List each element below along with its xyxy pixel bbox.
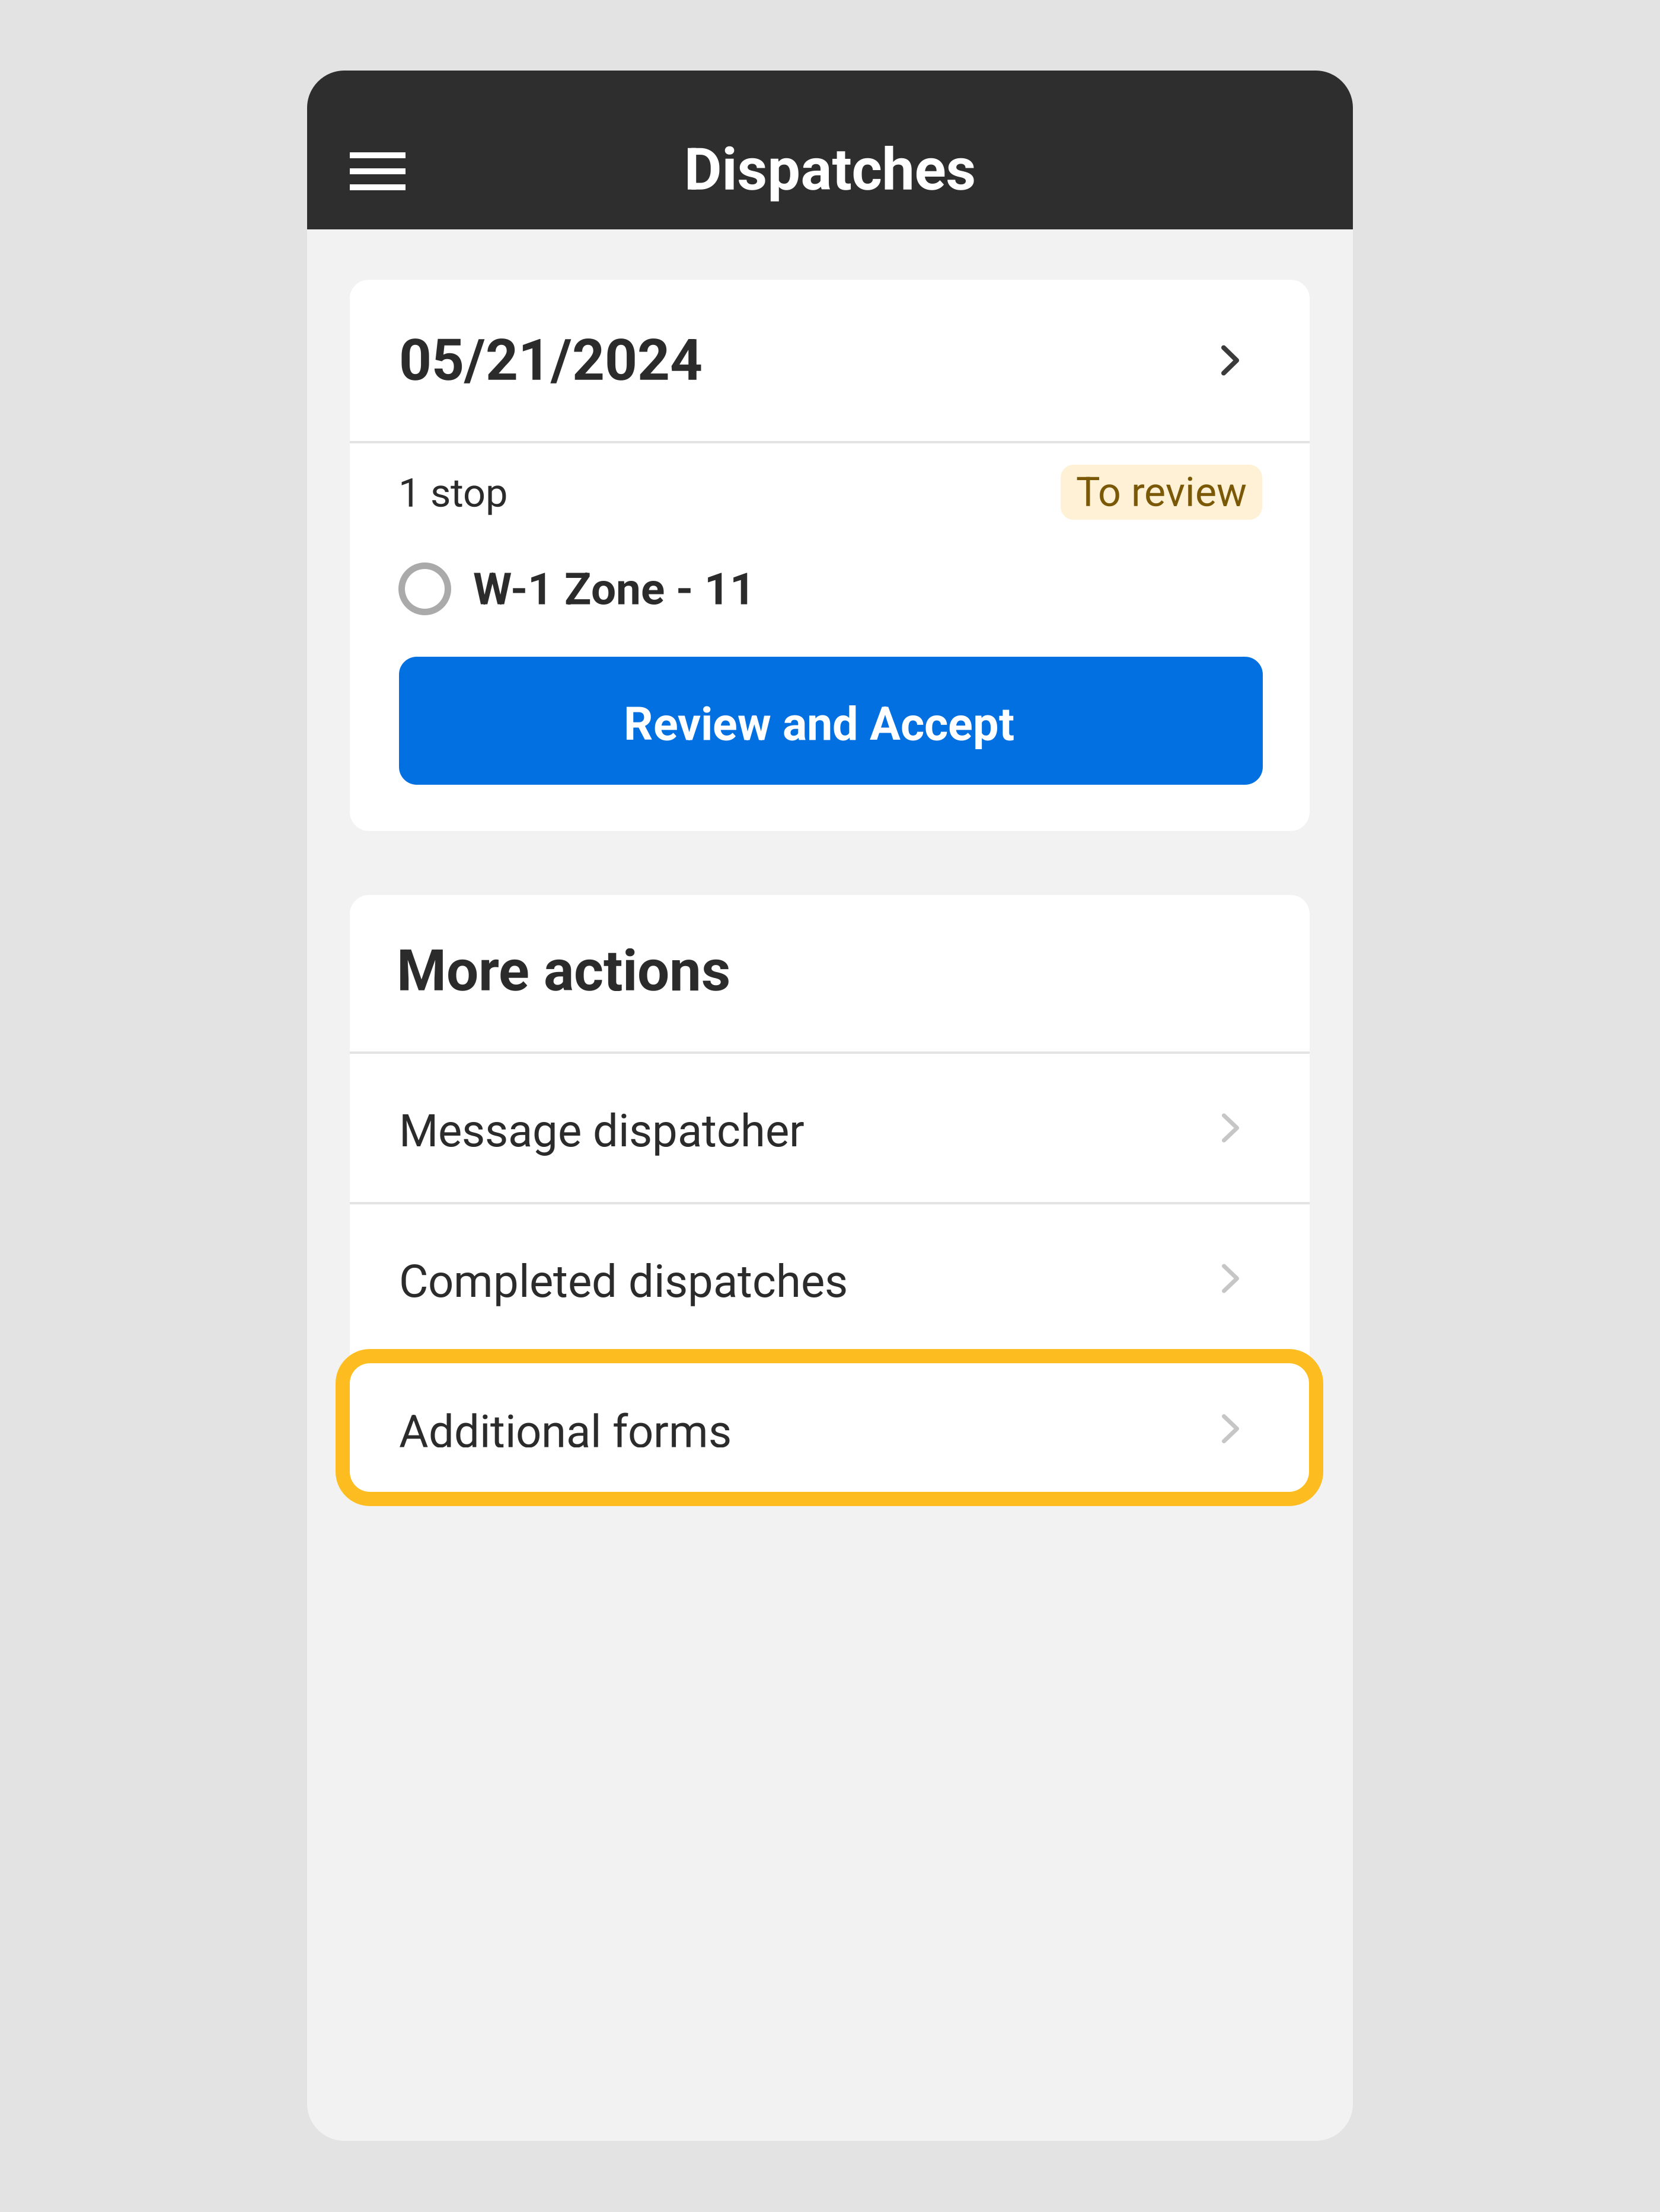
staticText: 05/21/2024 [399, 327, 703, 394]
staticText: Dispatches [684, 135, 976, 204]
staticText: To review [1076, 469, 1247, 516]
staticText: Review and Accept [624, 697, 1014, 751]
button[interactable]: Completed dispatches [350, 1204, 1310, 1353]
button[interactable]: Review and Accept [399, 657, 1263, 785]
button[interactable]: Menu [329, 123, 426, 220]
staticText: Additional forms [399, 1405, 732, 1458]
staticText: Message dispatcher [399, 1105, 805, 1157]
button[interactable]: Additional forms [350, 1353, 1310, 1499]
button[interactable]: 05/21/2024 [350, 281, 1310, 440]
staticText: More actions [397, 938, 730, 1004]
staticText: 1 stop [398, 470, 507, 516]
staticText: Completed dispatches [399, 1255, 848, 1308]
staticText: W-1 Zone - 11 [473, 563, 755, 615]
button[interactable]: Message dispatcher [350, 1054, 1310, 1202]
